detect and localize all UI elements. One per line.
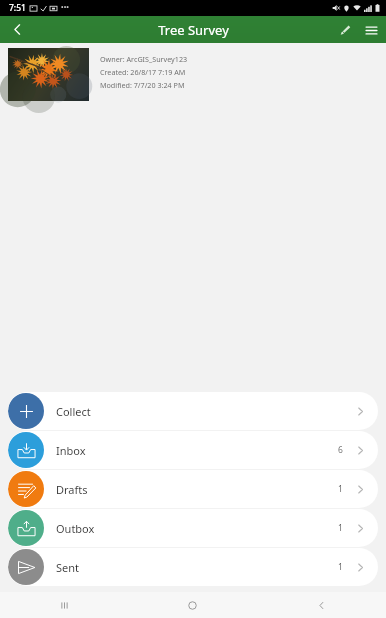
button[interactable]: Menu [358,17,384,43]
button[interactable]: Back [257,592,386,618]
button[interactable]: Recent apps [0,592,128,618]
staticText: 6 [338,444,343,456]
staticText: Inbox [56,443,86,458]
staticText: Tree Survey [158,21,229,39]
staticText: ••• [61,3,69,13]
button[interactable]: Home [128,592,257,618]
staticText: Collect [56,404,91,419]
staticText: 1 [338,522,343,534]
staticText: Modified: 7/7/20 3:24 PM [100,80,185,90]
staticText: 1 [338,483,343,495]
button[interactable]: Back [0,16,34,43]
staticText: Created: 26/8/17 7:19 AM [100,67,186,77]
staticText: Sent [56,560,80,575]
staticText: Owner: ArcGIS_Survey123 [100,54,188,64]
staticText: Drafts [56,482,88,497]
button[interactable]: Drafts [8,470,378,508]
button[interactable]: Inbox [8,431,378,469]
staticText: 7:51 [9,2,26,14]
button[interactable]: Collect [8,392,378,430]
staticText: 1 [338,561,343,573]
button[interactable]: Edit [332,17,358,43]
button[interactable]: Sent [8,548,378,586]
button[interactable]: Outbox [8,509,378,547]
staticText: Outbox [56,521,95,536]
